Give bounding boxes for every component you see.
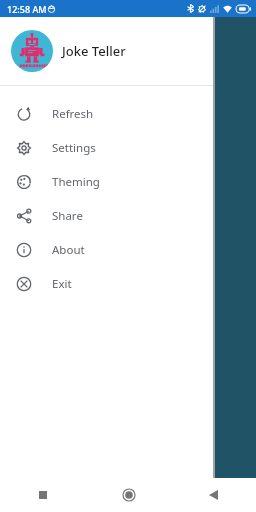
button[interactable]: Home bbox=[86, 478, 171, 512]
button[interactable]: Share bbox=[0, 199, 213, 233]
button[interactable]: Joke Teller bbox=[0, 17, 213, 85]
staticText: 12:58 AM bbox=[7, 3, 47, 15]
staticText: Exit bbox=[52, 276, 72, 292]
staticText: Share bbox=[52, 208, 83, 224]
button[interactable]: Refresh bbox=[0, 97, 213, 131]
button[interactable]: Settings bbox=[0, 131, 213, 165]
staticText: Joke Teller bbox=[62, 42, 126, 60]
staticText: Settings bbox=[52, 140, 96, 156]
button[interactable]: Recent apps bbox=[0, 478, 86, 512]
button[interactable]: Theming bbox=[0, 165, 213, 199]
button[interactable]: Back bbox=[171, 478, 256, 512]
staticText: About bbox=[52, 242, 85, 258]
button[interactable]: Exit bbox=[0, 267, 213, 301]
staticText: Refresh bbox=[52, 106, 94, 122]
staticText: Theming bbox=[52, 174, 100, 190]
button[interactable]: About bbox=[0, 233, 213, 267]
